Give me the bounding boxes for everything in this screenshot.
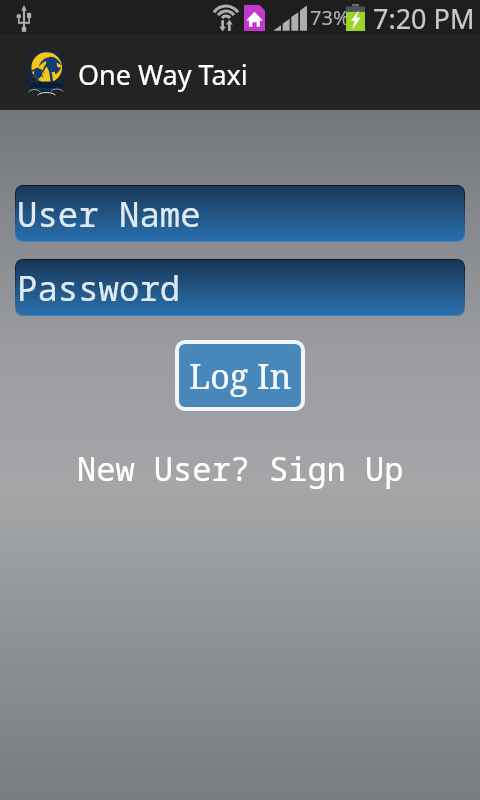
staticText: One Way Taxi [78,56,248,93]
button[interactable]: Password [15,259,465,316]
button[interactable]: New User? Sign Up [77,447,404,491]
staticText: Password [17,265,181,311]
button[interactable]: Log In [179,344,301,407]
staticText: User Name [17,191,201,237]
staticText: 73% [310,4,350,31]
staticText: Log In [189,353,292,399]
staticText: 7:20 PM [373,0,475,34]
button[interactable]: User Name [15,185,465,242]
